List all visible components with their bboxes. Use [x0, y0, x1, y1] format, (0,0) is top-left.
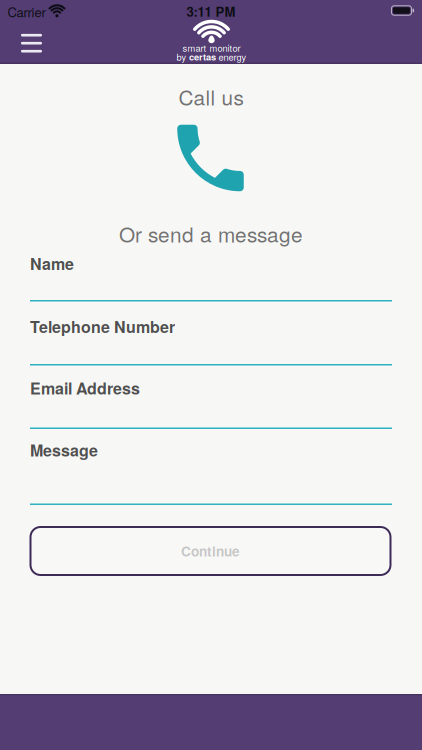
staticText: Email Address	[30, 376, 140, 399]
button[interactable]: Telephone Number	[30, 315, 392, 365]
staticText: certas	[189, 50, 216, 63]
staticText: energy	[218, 50, 246, 63]
button[interactable]: Message	[30, 438, 392, 505]
staticText: 3:11 PM	[186, 2, 235, 21]
button[interactable]: Call	[177, 125, 244, 191]
button[interactable]: Continue	[29, 526, 391, 576]
staticText: Message	[30, 438, 98, 461]
staticText: by	[176, 50, 186, 63]
button[interactable]: Name	[30, 252, 392, 301]
staticText: Carrier	[7, 2, 45, 21]
button[interactable]: Email Address	[30, 376, 392, 429]
button[interactable]: Menu	[21, 34, 42, 52]
staticText: Call us	[178, 82, 243, 111]
staticText: Or send a message	[119, 219, 303, 248]
staticText: Name	[30, 252, 74, 275]
staticText: Continue	[181, 541, 240, 561]
staticText: smart monitor	[182, 41, 240, 54]
staticText: Telephone Number	[30, 315, 175, 338]
